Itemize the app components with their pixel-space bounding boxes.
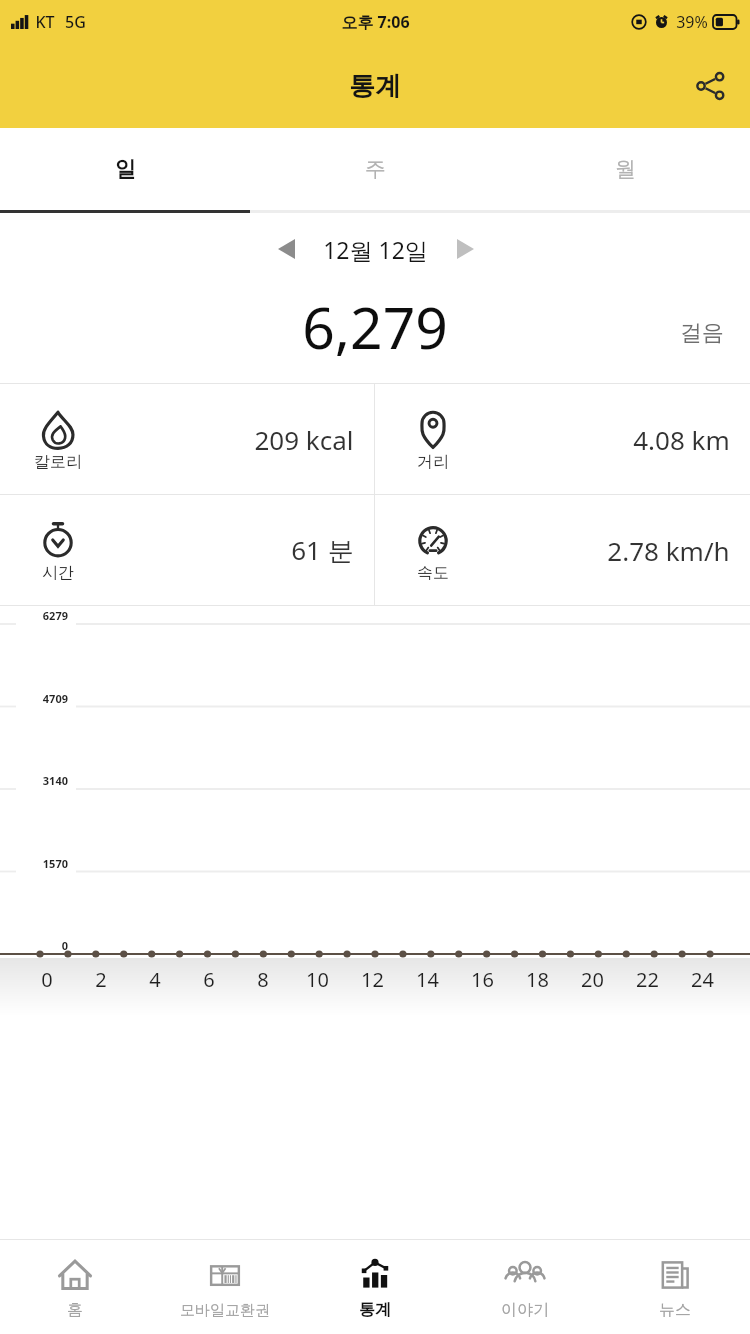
staticText: 일 — [115, 156, 136, 182]
button[interactable]: 칼로리 — [0, 384, 374, 494]
staticText: 14 — [416, 966, 439, 993]
staticText: 18 — [526, 966, 549, 993]
staticText: 통계 — [349, 70, 401, 103]
button[interactable]: 거리 — [375, 384, 750, 494]
staticText: 1570 — [20, 856, 68, 871]
button[interactable]: 속도 — [375, 495, 750, 605]
staticText: 4 — [149, 966, 161, 993]
staticText: 4709 — [20, 691, 68, 706]
staticText: 속도 — [417, 563, 449, 583]
staticText: 39% — [676, 11, 708, 33]
staticText: 8 — [257, 966, 269, 993]
button[interactable]: 시간 — [0, 495, 374, 605]
staticText: 통계 — [359, 1300, 391, 1320]
staticText: 월 — [615, 156, 636, 182]
button[interactable]: 주 — [250, 128, 500, 210]
staticText: 거리 — [417, 452, 449, 472]
staticText: 6,279 — [302, 288, 448, 366]
button[interactable]: Share — [682, 58, 738, 114]
staticText: KT — [35, 11, 55, 33]
staticText: 칼로리 — [34, 452, 82, 472]
button[interactable]: 이야기 — [450, 1240, 600, 1334]
staticText: 이야기 — [501, 1300, 549, 1320]
staticText: 20 — [581, 966, 604, 993]
button[interactable]: 월 — [500, 128, 750, 210]
staticText: 12 — [361, 966, 384, 993]
button[interactable]: 뉴스 — [600, 1240, 750, 1334]
staticText: 모바일교환권 — [180, 1301, 270, 1320]
staticText: 10 — [306, 966, 329, 993]
staticText: 16 — [471, 966, 494, 993]
staticText: 뉴스 — [659, 1300, 691, 1320]
staticText: 홈 — [67, 1300, 83, 1320]
staticText: 오후 7:06 — [341, 11, 410, 33]
staticText: 3140 — [20, 773, 68, 788]
button[interactable]: 모바일교환권 — [150, 1240, 300, 1334]
staticText: 2.78 km/h — [607, 533, 730, 568]
staticText: 22 — [636, 966, 659, 993]
staticText: 6279 — [20, 608, 68, 623]
staticText: 0 — [41, 966, 53, 993]
staticText: 5G — [65, 11, 86, 33]
staticText: 61 분 — [291, 532, 354, 568]
staticText: 2 — [95, 966, 107, 993]
button[interactable]: Previous day — [261, 224, 311, 274]
staticText: 걸음 — [680, 319, 724, 347]
staticText: 시간 — [42, 563, 74, 583]
button[interactable]: 홈 — [0, 1240, 150, 1334]
staticText: 0 — [20, 938, 68, 953]
button[interactable]: 통계 — [300, 1240, 450, 1334]
staticText: 4.08 km — [633, 422, 730, 457]
button[interactable]: Next day — [440, 224, 490, 274]
button[interactable]: 일 — [0, 128, 250, 210]
staticText: 24 — [691, 966, 714, 993]
staticText: 12월 12일 — [323, 234, 428, 265]
staticText: 6 — [203, 966, 215, 993]
staticText: 209 kcal — [254, 422, 354, 457]
staticText: 주 — [365, 156, 386, 182]
